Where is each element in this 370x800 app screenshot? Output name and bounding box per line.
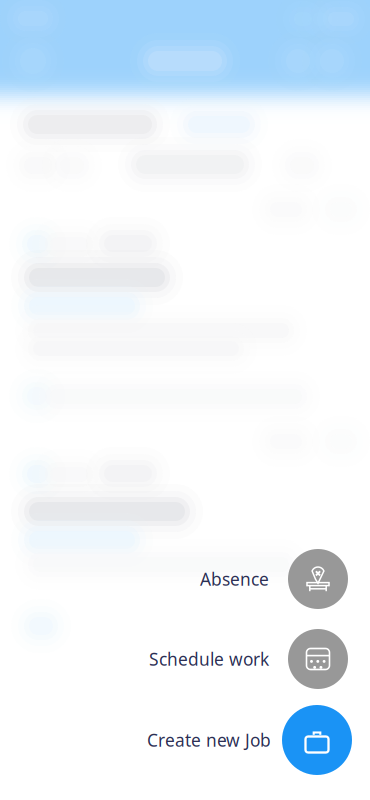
- button[interactable]: Schedule work: [0, 629, 370, 689]
- button[interactable]: Create new Job: [0, 705, 370, 775]
- staticText: Absence: [200, 567, 269, 590]
- staticText: Schedule work: [149, 647, 269, 670]
- staticText: Create new Job: [147, 728, 271, 751]
- button[interactable]: Absence: [0, 549, 370, 609]
